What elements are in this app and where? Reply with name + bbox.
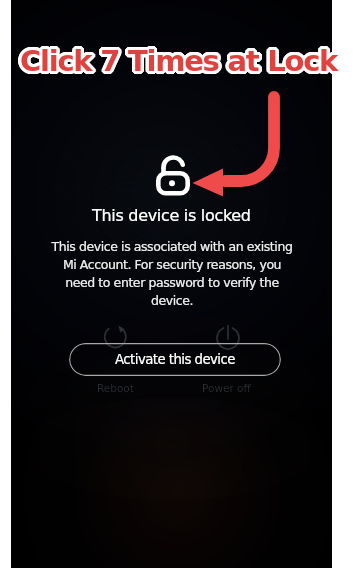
staticText: Click 7 Times at Lock — [21, 47, 339, 81]
staticText: Click 7 Times at Lock — [20, 44, 338, 78]
button[interactable]: Activate this device — [69, 343, 281, 376]
staticText: Click 7 Times at Lock — [23, 44, 341, 78]
staticText: Click 7 Times at Lock — [18, 46, 336, 80]
staticText: Click 7 Times at Lock — [23, 45, 341, 79]
other: Device locked — [146, 150, 190, 196]
staticText: Click 7 Times at Lock — [19, 41, 337, 75]
staticText: Click 7 Times at Lock — [22, 42, 340, 76]
staticText: Click 7 Times at Lock — [17, 43, 335, 77]
staticText: Click 7 Times at Lock — [20, 41, 338, 75]
staticText: Reboot — [97, 382, 134, 394]
staticText: Click 7 Times at Lock — [18, 42, 336, 76]
staticText: Click 7 Times at Lock — [17, 44, 335, 78]
staticText: Click 7 Times at Lock — [21, 41, 339, 75]
staticText: Click 7 Times at Lock — [23, 43, 341, 77]
staticText: Click 7 Times at Lock — [22, 46, 340, 80]
other: Pointer arrow — [11, 0, 332, 568]
staticText: Click 7 Times at Lock — [20, 47, 338, 81]
staticText: Click 7 Times at Lock — [19, 47, 337, 81]
staticText: Power off — [202, 382, 251, 394]
staticText: This device is associated with an existi… — [48, 239, 296, 307]
staticText: Click 7 Times at Lock — [17, 45, 335, 79]
staticText: This device is locked — [92, 206, 251, 225]
staticText: Activate this device — [115, 352, 235, 367]
